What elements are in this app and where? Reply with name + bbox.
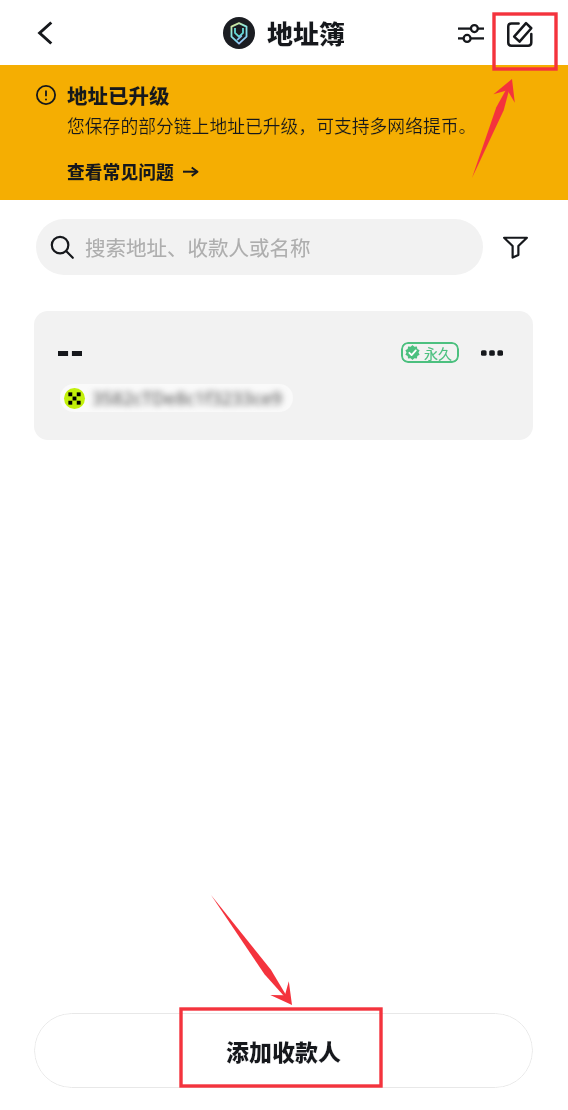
button[interactable]: 添加收款人 (34, 1013, 533, 1088)
staticText: 地址已升级 (67, 80, 170, 110)
staticText: 永久 (424, 343, 452, 363)
button[interactable]: Back (17, 5, 73, 61)
button[interactable]: 搜索地址、收款人或名称 (36, 219, 483, 275)
staticText: 查看常见问题 (67, 158, 174, 184)
staticText: 搜索地址、收款人或名称 (85, 232, 311, 262)
button[interactable]: Edit (496, 9, 544, 57)
button[interactable]: 永久 (34, 311, 533, 440)
staticText: 您保存的部分链上地址已升级，可支持多网络提币。 (67, 112, 477, 138)
button[interactable]: 查看常见问题 (67, 158, 198, 184)
staticText: 3582cTDe8c1f3233ce9 (92, 386, 283, 411)
button[interactable]: Filter (491, 221, 539, 269)
button[interactable]: More options (474, 335, 510, 371)
staticText: 添加收款人 (226, 1034, 341, 1067)
staticText: 地址簿 (267, 14, 346, 52)
button[interactable]: Settings (447, 9, 495, 57)
